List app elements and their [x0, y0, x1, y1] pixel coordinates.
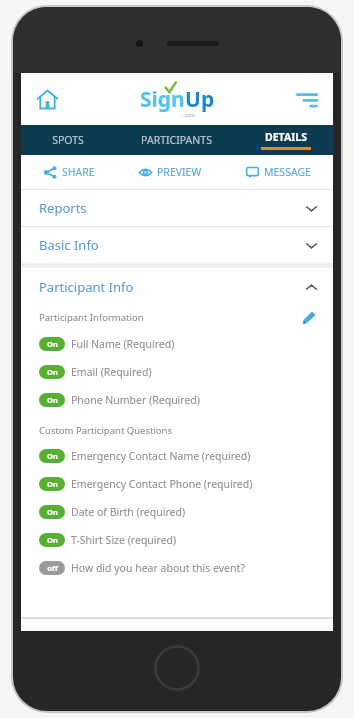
staticText: Emergency Contact Phone (required): [71, 477, 253, 491]
button[interactable]: On: [21, 386, 333, 414]
staticText: Up: [185, 85, 215, 114]
staticText: On: [47, 535, 58, 545]
staticText: Sign: [140, 85, 185, 114]
button[interactable]: DETAILS: [238, 125, 333, 155]
staticText: Participant Info: [39, 278, 134, 296]
button[interactable]: off: [21, 554, 333, 582]
staticText: On: [47, 367, 58, 377]
staticText: Basic Info: [39, 236, 99, 254]
staticText: T-Shirt Size (required): [71, 533, 177, 547]
staticText: MESSAGE: [264, 165, 311, 179]
button[interactable]: Basic Info: [21, 227, 333, 263]
button[interactable]: On: [21, 442, 333, 470]
staticText: off: [47, 563, 58, 573]
button[interactable]: On: [21, 330, 333, 358]
button[interactable]: Edit: [299, 307, 319, 327]
staticText: Participant Information: [39, 311, 144, 324]
staticText: How did you hear about this event?: [71, 561, 245, 575]
button[interactable]: On: [21, 498, 333, 526]
staticText: On: [47, 451, 58, 461]
staticText: Reports: [39, 199, 87, 217]
button[interactable]: SHARE: [21, 155, 118, 189]
button[interactable]: MESSAGE: [223, 155, 333, 189]
staticText: Custom Participant Questions: [39, 424, 173, 437]
staticText: PREVIEW: [157, 165, 202, 179]
button[interactable]: Reports: [21, 190, 333, 226]
staticText: .com: [183, 112, 195, 119]
staticText: Phone Number (Required): [71, 393, 200, 407]
staticText: Emergency Contact Name (required): [71, 449, 251, 463]
button[interactable]: On: [21, 526, 333, 554]
button[interactable]: On: [21, 470, 333, 498]
staticText: PARTICIPANTS: [141, 133, 212, 147]
button[interactable]: On: [21, 358, 333, 386]
button[interactable]: PARTICIPANTS: [115, 125, 238, 155]
staticText: Email (Required): [71, 365, 152, 379]
staticText: On: [47, 339, 58, 349]
staticText: Full Name (Required): [71, 337, 175, 351]
staticText: DETAILS: [265, 130, 307, 144]
button[interactable]: Home: [30, 82, 64, 116]
staticText: On: [47, 507, 58, 517]
staticText: On: [47, 479, 58, 489]
button[interactable]: SPOTS: [21, 125, 115, 155]
staticText: SPOTS: [52, 133, 84, 147]
button[interactable]: PREVIEW: [118, 155, 223, 189]
button[interactable]: Participant Info: [21, 268, 333, 306]
staticText: On: [47, 395, 58, 405]
staticText: Date of Birth (required): [71, 505, 186, 519]
button[interactable]: Menu: [290, 82, 324, 116]
staticText: SHARE: [62, 165, 95, 179]
